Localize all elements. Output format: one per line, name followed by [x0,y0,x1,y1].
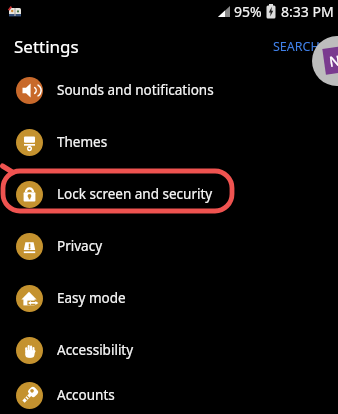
button[interactable]: Easy mode [0,272,338,324]
staticText: 95% [234,2,262,21]
staticText: SEARCH [273,38,320,55]
button[interactable]: Themes [0,116,338,168]
staticText: Settings [14,35,79,58]
staticText: Accounts [57,386,115,404]
staticText: Accessibility [57,341,134,359]
button[interactable]: Privacy [0,220,338,272]
button[interactable]: N [312,36,338,86]
staticText: N [328,51,338,71]
staticText: Privacy [57,237,103,255]
staticText: 8:33 PM [281,2,334,21]
button[interactable]: Accessibility [0,324,338,376]
staticText: Easy mode [57,289,126,307]
button[interactable]: Sounds and notifications [0,64,338,116]
button[interactable]: Lock screen and security [0,168,338,220]
button[interactable]: Accounts [0,376,338,414]
staticText: Sounds and notifications [57,81,214,99]
button[interactable]: SEARCH [273,38,320,55]
staticText: Lock screen and security [57,185,213,203]
staticText: Themes [57,133,108,151]
